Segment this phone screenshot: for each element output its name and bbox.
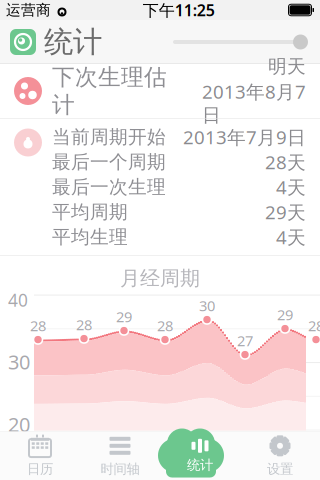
staticText: 4天: [276, 225, 306, 249]
staticText: 28: [157, 316, 173, 335]
button[interactable]: 最后一个周期: [52, 149, 306, 174]
staticText: 明天: [268, 55, 306, 78]
staticText: 平均周期: [52, 200, 128, 223]
staticText: 运营商: [6, 1, 51, 19]
button[interactable]: 日历: [0, 431, 80, 480]
staticText: 28: [30, 316, 46, 335]
button[interactable]: 设置: [240, 431, 320, 480]
button[interactable]: 统计: [10, 24, 102, 60]
staticText: 月经周期: [120, 266, 200, 291]
staticText: 最后一个周期: [52, 150, 166, 173]
staticText: 28: [308, 316, 320, 335]
button[interactable]: 平均周期: [52, 199, 306, 224]
button[interactable]: 时间轴: [80, 431, 160, 480]
staticText: 20: [8, 411, 30, 438]
staticText: 下午11:25: [143, 0, 215, 21]
staticText: 28天: [265, 150, 306, 174]
staticText: 日历: [27, 461, 53, 477]
button[interactable]: 统计: [160, 431, 240, 480]
staticText: 40: [8, 289, 28, 312]
staticText: 29: [277, 305, 293, 324]
button[interactable]: 最后一次生理: [52, 174, 306, 199]
staticText: 30: [8, 348, 30, 375]
staticText: 统计: [44, 24, 102, 60]
staticText: 29天: [265, 200, 306, 224]
staticText: 29: [116, 307, 132, 326]
staticText: 28: [76, 315, 92, 334]
staticText: 2013年7月9日: [183, 125, 306, 149]
staticText: 平均生理: [52, 225, 128, 248]
staticText: 时间轴: [100, 461, 139, 477]
staticText: 当前周期开始: [52, 125, 166, 148]
staticText: 设置: [267, 461, 293, 477]
button[interactable]: 平均生理: [52, 224, 306, 249]
staticText: 4天: [276, 175, 306, 199]
button[interactable]: 当前周期开始: [52, 124, 306, 149]
staticText: 下次生理估计: [52, 63, 167, 119]
staticText: 30: [199, 296, 215, 315]
button[interactable]: 下次生理估计: [0, 64, 320, 118]
staticText: 27: [237, 331, 253, 350]
staticText: 最后一次生理: [52, 175, 166, 198]
staticText: 统计: [187, 457, 213, 473]
staticText: 2013年8月7日: [202, 79, 306, 127]
